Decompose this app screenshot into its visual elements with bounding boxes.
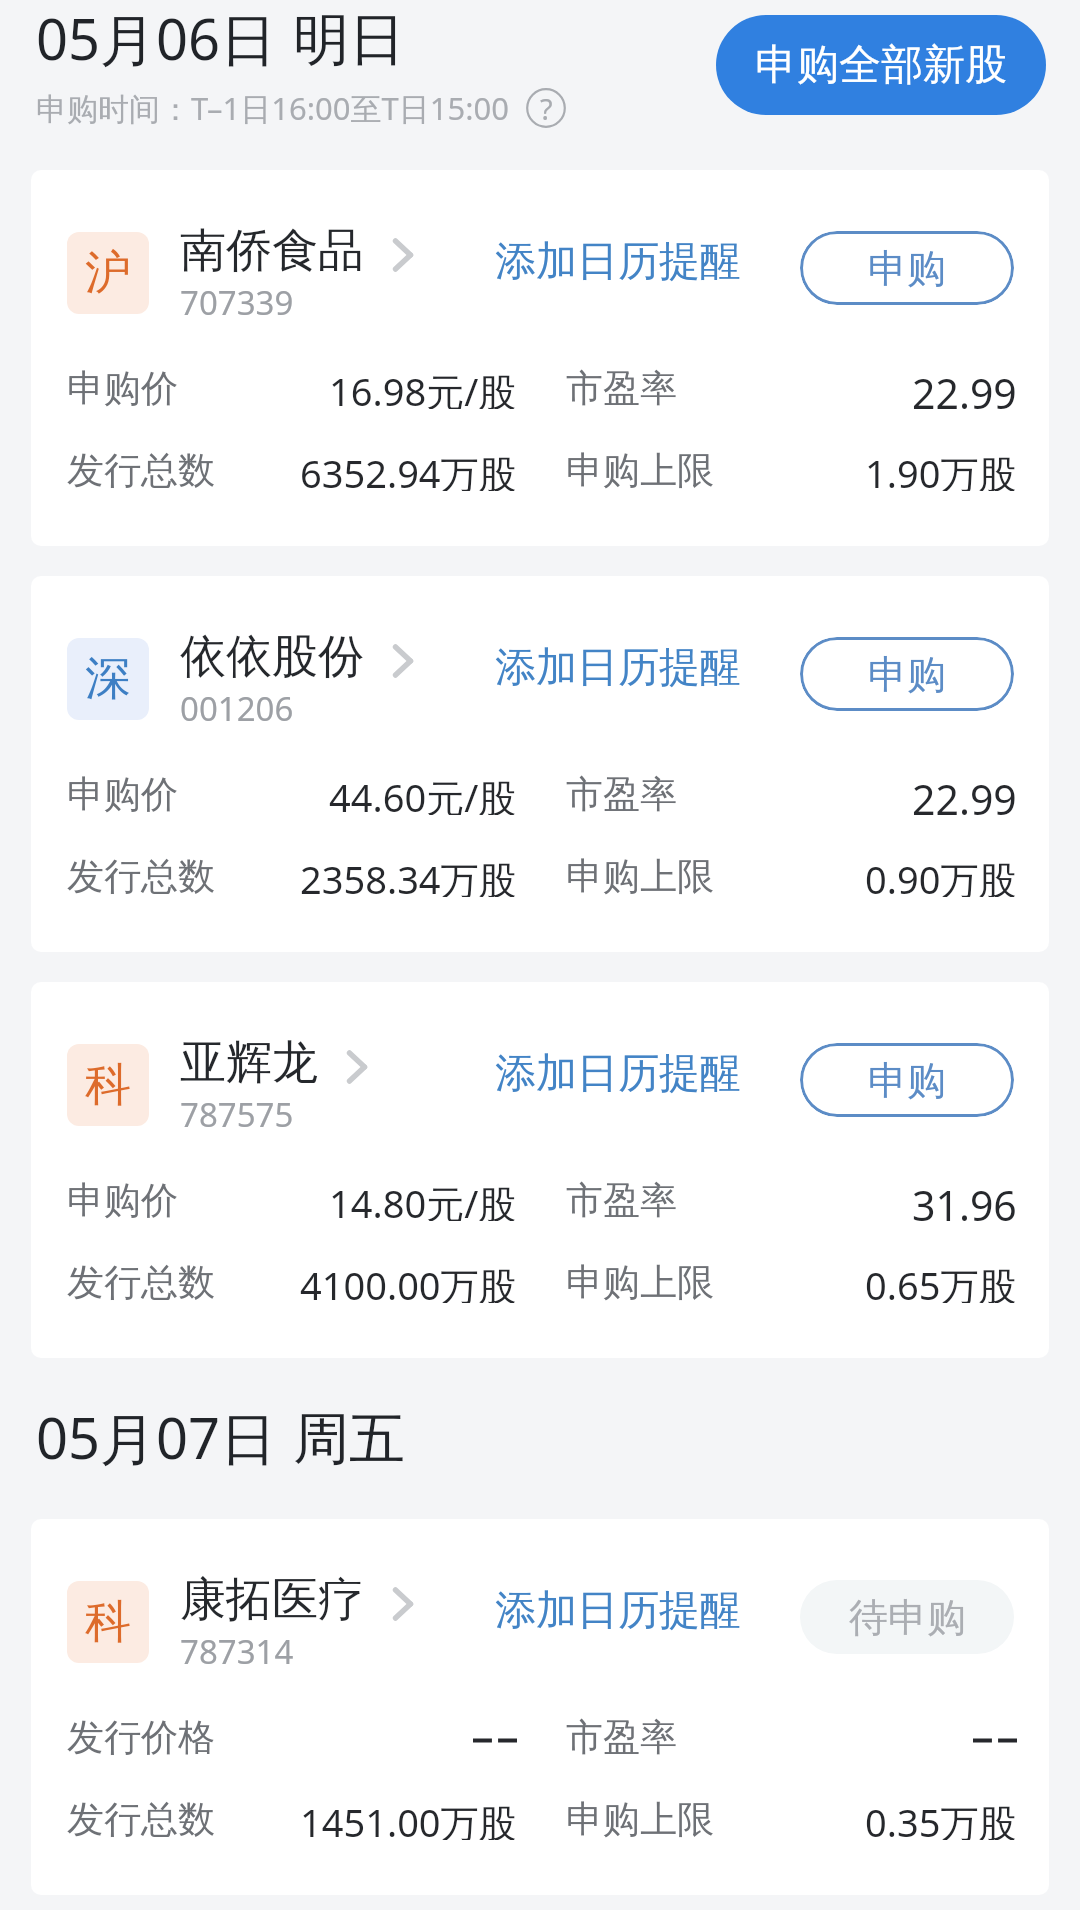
other: 查看详情: [347, 1051, 367, 1083]
staticText: 申购全部新股: [755, 39, 1007, 92]
staticText: 44.60元/股: [329, 771, 517, 815]
staticText: 康拓医疗: [180, 1571, 364, 1629]
button[interactable]: 待申购: [800, 1580, 1014, 1654]
staticText: 16.98元/股: [329, 365, 517, 409]
button[interactable]: 添加日历提醒: [495, 1048, 741, 1100]
other: 查看详情: [393, 1588, 413, 1620]
staticText: 添加日历提醒: [495, 236, 741, 288]
staticText: 787314: [180, 1629, 294, 1674]
staticText: 4100.00万股: [300, 1259, 517, 1303]
button[interactable]: 沪: [31, 170, 1049, 546]
staticText: 发行价格: [67, 1714, 215, 1758]
staticText: 申购价: [67, 1177, 178, 1221]
staticText: 添加日历提醒: [495, 642, 741, 694]
staticText: 787575: [180, 1092, 294, 1137]
staticText: 22.99: [912, 771, 1017, 815]
staticText: 市盈率: [566, 771, 677, 815]
button[interactable]: 添加日历提醒: [495, 642, 741, 694]
button[interactable]: 申购: [800, 1043, 1014, 1117]
other: 查看详情: [393, 239, 413, 271]
staticText: 0.90万股: [865, 853, 1017, 897]
staticText: 周五: [293, 1404, 405, 1475]
staticText: 明日: [293, 5, 405, 76]
staticText: 05月06日: [36, 0, 277, 76]
staticText: 申购: [868, 650, 946, 699]
button[interactable]: 科: [31, 982, 1049, 1358]
staticText: 南侨食品: [180, 222, 364, 280]
staticText: 14.80元/股: [329, 1177, 517, 1221]
staticText: 6352.94万股: [300, 447, 517, 491]
staticText: 添加日历提醒: [495, 1048, 741, 1100]
button[interactable]: 添加日历提醒: [495, 1585, 741, 1637]
staticText: 0.35万股: [865, 1796, 1017, 1840]
staticText: ?: [540, 89, 553, 128]
staticText: 22.99: [912, 365, 1017, 409]
staticText: 申购: [868, 1056, 946, 1105]
staticText: 发行总数: [67, 1259, 215, 1303]
button[interactable]: 康拓医疗: [180, 1571, 413, 1674]
staticText: 科: [85, 1593, 131, 1651]
staticText: 05月07日: [36, 1399, 277, 1475]
staticText: 发行总数: [67, 853, 215, 897]
staticText: 2358.34万股: [300, 853, 517, 897]
other: 查看详情: [393, 645, 413, 677]
button[interactable]: 申购: [800, 637, 1014, 711]
staticText: 亚辉龙: [180, 1034, 318, 1092]
staticText: 1451.00万股: [300, 1796, 517, 1840]
staticText: 申购价: [67, 771, 178, 815]
button[interactable]: 亚辉龙: [180, 1034, 367, 1137]
staticText: 市盈率: [566, 1714, 677, 1758]
staticText: 0.65万股: [865, 1259, 1017, 1303]
button[interactable]: 南侨食品: [180, 222, 413, 325]
staticText: 申购上限: [566, 853, 714, 897]
button[interactable]: 添加日历提醒: [495, 236, 741, 288]
staticText: 申购上限: [566, 447, 714, 491]
staticText: 发行总数: [67, 1796, 215, 1840]
staticText: 市盈率: [566, 365, 677, 409]
staticText: 深: [85, 650, 131, 708]
staticText: 001206: [180, 686, 294, 731]
staticText: 科: [85, 1056, 131, 1114]
button[interactable]: 科: [31, 1519, 1049, 1895]
staticText: 申购: [868, 244, 946, 293]
button[interactable]: 深: [31, 576, 1049, 952]
staticText: 沪: [85, 244, 131, 302]
staticText: 申购上限: [566, 1796, 714, 1840]
button[interactable]: 依依股份: [180, 628, 413, 731]
staticText: 申购上限: [566, 1259, 714, 1303]
staticText: 待申购: [849, 1593, 966, 1642]
button[interactable]: 申购全部新股: [716, 15, 1046, 115]
staticText: 1.90万股: [865, 447, 1017, 491]
staticText: 市盈率: [566, 1177, 677, 1221]
button[interactable]: 申购时间说明: [526, 88, 566, 128]
staticText: 申购时间：T–1日16:00至T日15:00: [36, 87, 509, 129]
staticText: 依依股份: [180, 628, 364, 686]
staticText: 31.96: [912, 1177, 1017, 1221]
staticText: 添加日历提醒: [495, 1585, 741, 1637]
staticText: 发行总数: [67, 447, 215, 491]
staticText: 707339: [180, 280, 294, 325]
staticText: 申购价: [67, 365, 178, 409]
button[interactable]: 申购: [800, 231, 1014, 305]
